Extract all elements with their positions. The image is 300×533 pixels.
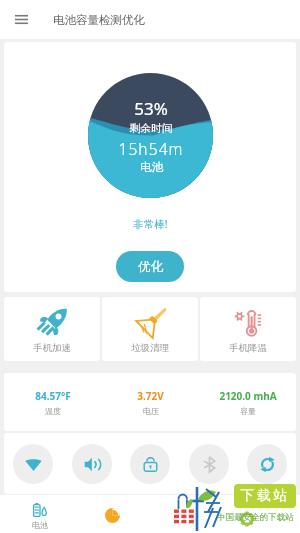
- staticText: 非常棒!: [133, 217, 168, 231]
- button[interactable]: Wifi: [13, 444, 53, 484]
- button[interactable]: 垃圾清理: [102, 297, 198, 361]
- staticText: 2120.0 mhA: [219, 389, 277, 403]
- button[interactable]: 手机降温: [200, 297, 296, 361]
- button[interactable]: Bluetooth: [189, 444, 229, 484]
- button[interactable]: Usage: [75, 495, 150, 533]
- staticText: 15h54m: [118, 138, 184, 159]
- button[interactable]: 手机加速: [4, 297, 100, 361]
- button[interactable]: Menu: [0, 0, 42, 39]
- button[interactable]: Lock: [130, 444, 170, 484]
- button[interactable]: 3.72V: [102, 373, 199, 431]
- button[interactable]: 电池: [0, 495, 80, 533]
- staticText: 中国最安全的下载站: [217, 512, 294, 523]
- staticText: 电池容量检测优化: [53, 13, 145, 27]
- button[interactable]: 2120.0 mhA: [199, 373, 296, 431]
- button[interactable]: 84.57°F: [4, 373, 102, 431]
- staticText: 剩余时间: [129, 122, 173, 136]
- staticText: 电池: [140, 160, 163, 174]
- staticText: 3.72V: [137, 389, 164, 403]
- staticText: 下载站: [240, 487, 290, 505]
- staticText: 温度: [45, 406, 61, 416]
- staticText: 垃圾清理: [131, 342, 169, 354]
- button[interactable]: Volume: [72, 444, 112, 484]
- staticText: 优化: [138, 259, 163, 275]
- staticText: 电池: [32, 520, 48, 530]
- staticText: 手机降温: [229, 342, 267, 354]
- button[interactable]: 优化: [116, 251, 184, 282]
- staticText: 手机加速: [33, 342, 71, 354]
- button[interactable]: Sync: [247, 444, 287, 484]
- staticText: 84.57°F: [35, 389, 71, 403]
- staticText: 容量: [240, 406, 256, 416]
- staticText: 电压: [143, 406, 159, 416]
- button[interactable]: More: [225, 495, 300, 533]
- button[interactable]: Apps: [150, 495, 225, 533]
- staticText: 53%: [134, 97, 168, 120]
